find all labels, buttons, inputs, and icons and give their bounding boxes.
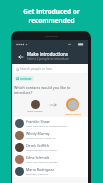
staticText: Whitly Murray: [26, 131, 50, 136]
button[interactable]: Select contact: [63, 98, 82, 115]
staticText: Global Mobility consultant: [26, 148, 57, 151]
button[interactable]: All contacts: [14, 76, 34, 81]
staticText: Get introduced or: [23, 7, 80, 16]
staticText: Search people or lists: [20, 67, 52, 71]
button[interactable]: Mario Rodriguez: [12, 165, 88, 177]
staticText: Select contact: [65, 112, 81, 115]
staticText: Senior Partner, Lumen Co: [26, 136, 56, 139]
button[interactable]: Edna Schmidt: [12, 153, 88, 165]
staticText: Select 2 people to introduce: [27, 57, 69, 61]
button[interactable]: Back: [16, 52, 25, 61]
staticText: Engineer, Trackline: [26, 172, 48, 175]
staticText: Which contacts would you like to introdu…: [14, 85, 88, 95]
staticText: recommended: [28, 16, 75, 25]
button[interactable]: Search people or lists: [13, 64, 87, 73]
button[interactable]: Derek Griffith: [12, 141, 88, 153]
staticText: All contacts: [16, 77, 32, 81]
staticText: Stella Hughes: [27, 109, 43, 112]
staticText: Make introductions: [27, 51, 68, 57]
staticText: Franklin Shaw: [26, 119, 50, 124]
staticText: Sales consultant at Rodden: [26, 160, 58, 163]
staticText: Sales consultant at Rodden Barnett: [26, 124, 68, 127]
staticText: Edna Schmidt: [26, 155, 50, 160]
button[interactable]: Whitly Murray: [12, 129, 88, 141]
staticText: Derek Griffith: [26, 143, 49, 148]
staticText: Mario Rodriguez: [26, 167, 54, 172]
button[interactable]: Franklin Shaw: [12, 117, 88, 129]
